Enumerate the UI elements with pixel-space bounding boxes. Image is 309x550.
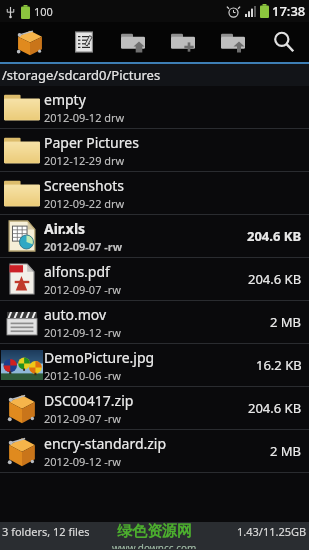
button[interactable]: Home folder: [108, 22, 158, 62]
button[interactable]: empty: [0, 86, 309, 129]
staticText: 2012-09-07 -rw: [44, 411, 122, 426]
staticText: 2012-12-29 drw: [44, 153, 125, 168]
staticText: 16.2 KB: [256, 356, 302, 374]
button[interactable]: DSC00417.zip: [0, 387, 309, 430]
button[interactable]: Add folder: [158, 22, 208, 62]
staticText: DSC00417.zip: [44, 391, 134, 410]
staticText: 2012-09-12 drw: [44, 110, 125, 125]
staticText: Air.xls: [44, 219, 86, 238]
staticText: Screenshots: [44, 176, 124, 195]
staticText: 2012-09-07 -rw: [44, 239, 123, 254]
button[interactable]: Tasks: [60, 22, 108, 62]
staticText: auto.mov: [44, 305, 107, 324]
button[interactable]: Search: [258, 22, 309, 62]
staticText: 1.43/11.25GB: [237, 524, 307, 539]
button[interactable]: encry-standard.zip: [0, 430, 309, 473]
staticText: 2012-09-12 -rw: [44, 325, 122, 340]
button[interactable]: /storage/sdcard0/Pictures: [0, 64, 309, 86]
staticText: 17:38: [272, 2, 306, 20]
staticText: DemoPicture.jpg: [44, 348, 155, 367]
staticText: 204.6 KB: [247, 227, 302, 245]
staticText: Paper Pictures: [44, 133, 139, 152]
staticText: 2012-09-12 -rw: [44, 454, 122, 469]
staticText: 2 MB: [270, 442, 302, 460]
staticText: 绿色资源网: [117, 522, 192, 541]
button[interactable]: Upload folder: [208, 22, 258, 62]
staticText: 2012-09-22 drw: [44, 196, 125, 211]
staticText: 2012-09-07 -rw: [44, 282, 122, 297]
staticText: 2012-10-06 -rw: [44, 368, 122, 383]
staticText: 3 folders, 12 files: [2, 524, 90, 539]
button[interactable]: Paper Pictures: [0, 129, 309, 172]
staticText: 204.6 KB: [248, 399, 302, 417]
staticText: empty: [44, 90, 86, 109]
button[interactable]: App: [0, 22, 60, 62]
staticText: 2 MB: [270, 313, 302, 331]
staticText: alfons.pdf: [44, 262, 110, 281]
button[interactable]: Air.xls: [0, 215, 309, 258]
button[interactable]: auto.mov: [0, 301, 309, 344]
staticText: 204.6 KB: [248, 270, 302, 288]
staticText: www.downcc.com: [112, 541, 197, 549]
button[interactable]: Screenshots: [0, 172, 309, 215]
staticText: /storage/sdcard0/Pictures: [2, 66, 161, 84]
button[interactable]: alfons.pdf: [0, 258, 309, 301]
staticText: 100: [34, 4, 53, 19]
button[interactable]: DemoPicture.jpg: [0, 344, 309, 387]
staticText: encry-standard.zip: [44, 434, 167, 453]
